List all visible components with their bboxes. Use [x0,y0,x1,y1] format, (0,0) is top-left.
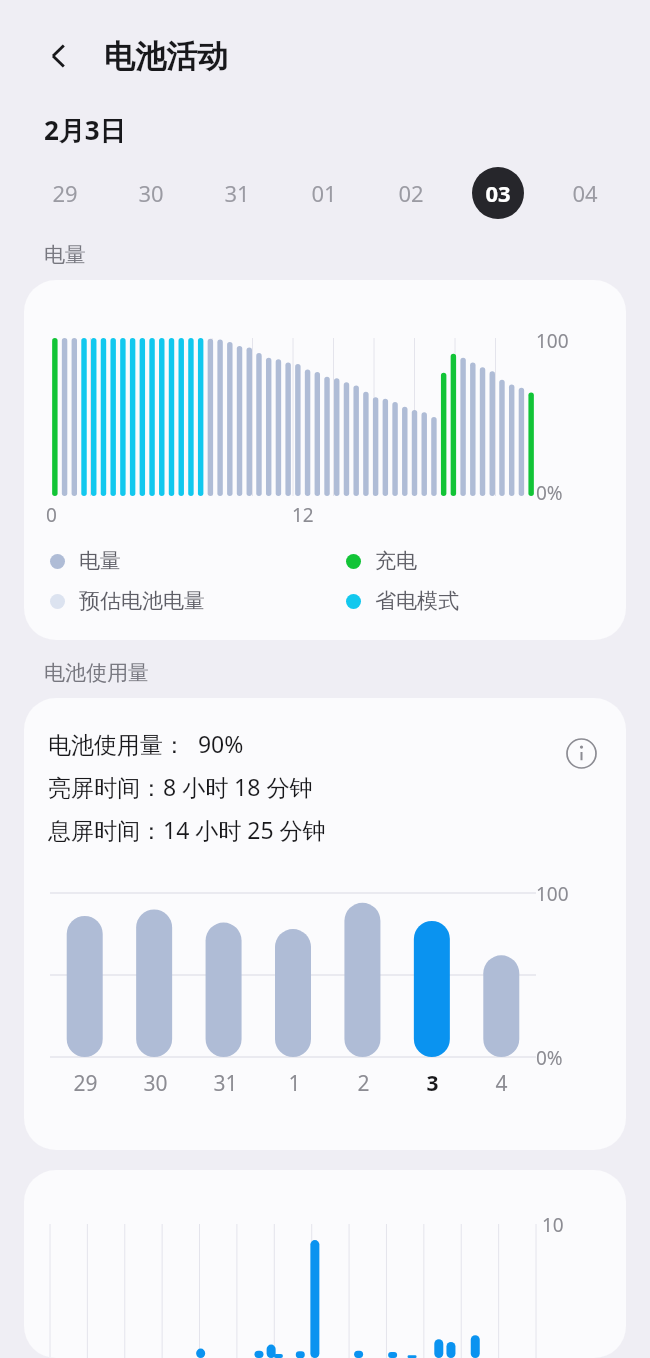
staticText: 04 [572,178,598,208]
staticText: 0% [536,480,563,506]
staticText: 充电 [375,548,417,574]
staticText: 0 [46,502,57,528]
staticText: 4 [495,1069,508,1098]
staticText: 10 [542,1212,564,1238]
staticText: 100 [536,881,569,907]
staticText: 省电模式 [375,588,459,614]
staticText: 31 [213,1069,238,1098]
staticText: 电量 [79,548,121,574]
staticText: 电池活动 [104,37,228,76]
staticText: 电池使用量 [44,660,149,686]
staticText: 31 [224,178,250,208]
staticText: 29 [52,178,78,208]
button[interactable]: 02 [367,162,454,224]
button[interactable]: 30 [108,162,194,224]
staticText: 3 [426,1069,439,1098]
staticText: 息屏时间：14 小时 25 分钟 [48,814,326,845]
staticText: 29 [73,1069,98,1098]
staticText: 30 [138,178,164,208]
button[interactable]: Information [558,730,604,776]
staticText: 12 [292,502,314,528]
button[interactable]: 03 [454,162,541,224]
staticText: 02 [398,178,424,208]
staticText: 2 [357,1069,370,1098]
button[interactable]: 01 [280,162,367,224]
button[interactable]: 31 [194,162,280,224]
staticText: 03 [485,178,511,208]
staticText: 预估电池电量 [79,588,205,614]
button[interactable]: 100 [24,280,626,640]
button[interactable]: Back [32,29,86,83]
button[interactable]: 29 [22,162,108,224]
staticText: 100 [536,328,569,354]
staticText: 电池使用量： 90% [48,728,244,759]
staticText: 0% [536,1045,563,1071]
staticText: 01 [311,178,337,208]
staticText: 30 [143,1069,168,1098]
staticText: 电量 [44,242,86,268]
staticText: 亮屏时间：8 小时 18 分钟 [48,771,313,802]
staticText: 2月3日 [44,112,126,148]
staticText: 1 [288,1069,301,1098]
button[interactable]: 04 [541,162,628,224]
